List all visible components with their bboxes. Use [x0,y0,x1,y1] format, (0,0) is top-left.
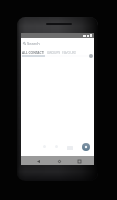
staticText: FAVOURITES [62,50,76,54]
button[interactable]: FAVOURITES [62,49,76,55]
button[interactable]: Account [89,54,93,58]
button[interactable]: Recents [54,144,59,149]
button[interactable]: Back [35,158,41,164]
staticText: ALL CONTACTS [22,50,44,54]
button[interactable]: ALL CONTACTS [22,49,44,55]
other: Search [23,42,26,45]
button[interactable]: Dialpad [66,144,73,151]
button[interactable]: Favourites [42,144,47,149]
button[interactable]: Recent apps [76,158,82,164]
button[interactable]: Home [56,158,62,164]
staticText: Search [27,41,40,46]
button[interactable]: New contact [82,143,90,151]
staticText: GROUPS [47,50,60,54]
button[interactable]: GROUPS [47,49,60,55]
